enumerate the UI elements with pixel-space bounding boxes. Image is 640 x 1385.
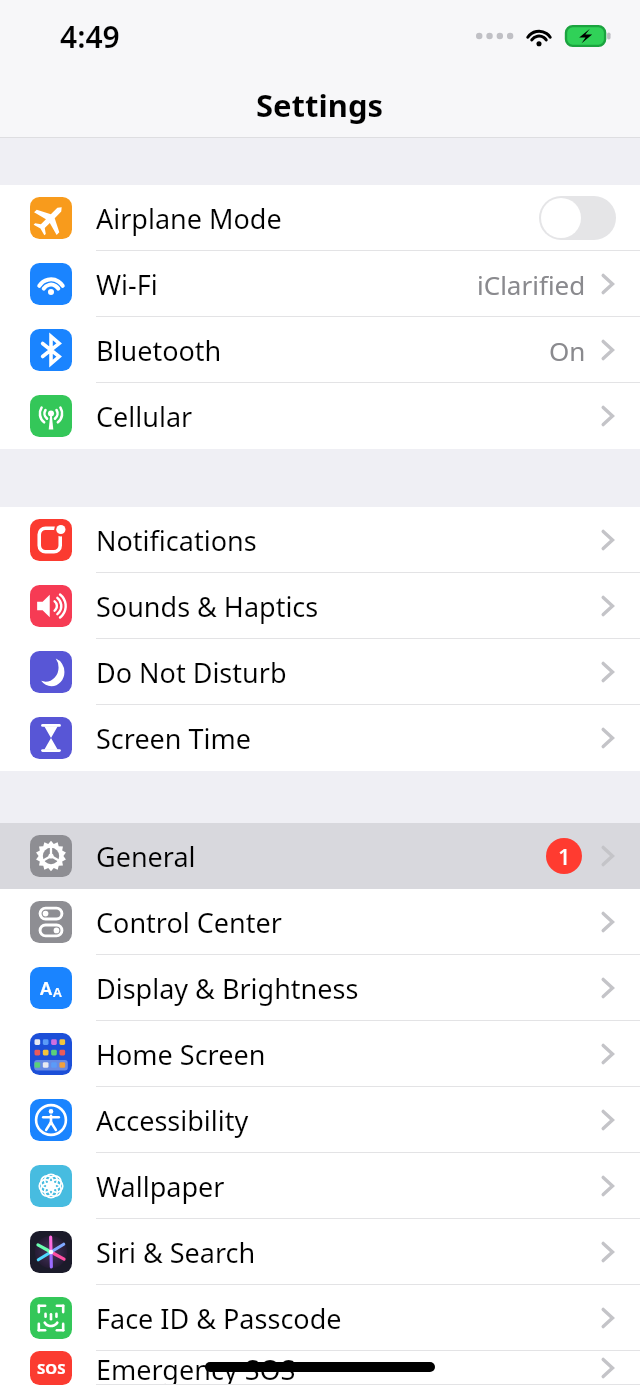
button[interactable]: A <box>0 955 640 1021</box>
staticText: Screen Time <box>96 720 600 757</box>
button[interactable]: Airplane Mode toggle, off <box>539 196 616 240</box>
other: Open <box>600 337 616 363</box>
button[interactable]: Airplane Mode <box>0 185 640 251</box>
other: Open <box>600 909 616 935</box>
button[interactable]: Sounds & Haptics <box>0 573 640 639</box>
other: Open <box>600 1355 616 1381</box>
button[interactable]: Bluetooth <box>0 317 640 383</box>
button[interactable]: Home Screen <box>0 1021 640 1087</box>
other: Open <box>600 593 616 619</box>
staticText: Sounds & Haptics <box>96 588 600 625</box>
other: Open <box>600 403 616 429</box>
other: Open <box>600 1305 616 1331</box>
staticText: Notifications <box>96 522 600 559</box>
staticText: A <box>53 983 62 1001</box>
staticText: Wallpaper <box>96 1168 600 1205</box>
staticText: Siri & Search <box>96 1234 600 1271</box>
staticText: Bluetooth <box>96 332 549 369</box>
staticText: Emergency SOS <box>96 1351 600 1385</box>
other: Open <box>600 843 616 869</box>
staticText: Face ID & Passcode <box>96 1300 600 1337</box>
staticText: iClarified <box>477 267 586 302</box>
button[interactable]: Face ID & Passcode <box>0 1285 640 1351</box>
button[interactable]: SOS <box>0 1351 640 1385</box>
other: Open <box>600 659 616 685</box>
button[interactable]: Accessibility <box>0 1087 640 1153</box>
staticText: General <box>96 838 546 875</box>
staticText: 1 <box>558 841 571 871</box>
staticText: Home Screen <box>96 1036 600 1073</box>
button[interactable]: Notifications <box>0 507 640 573</box>
button[interactable]: Do Not Disturb <box>0 639 640 705</box>
other: Open <box>600 725 616 751</box>
button[interactable]: Control Center <box>0 889 640 955</box>
other: Open <box>600 1107 616 1133</box>
staticText: Accessibility <box>96 1102 600 1139</box>
staticText: Settings <box>256 84 384 126</box>
button[interactable]: General <box>0 823 640 889</box>
other: Open <box>600 975 616 1001</box>
staticText: Control Center <box>96 904 600 941</box>
other: Open <box>600 1173 616 1199</box>
staticText: SOS <box>37 1358 66 1378</box>
staticText: On <box>549 333 586 368</box>
button[interactable]: Wi-Fi <box>0 251 640 317</box>
staticText: 4:49 <box>60 16 120 57</box>
staticText: Display & Brightness <box>96 970 600 1007</box>
button[interactable]: Screen Time <box>0 705 640 771</box>
staticText: Do Not Disturb <box>96 654 600 691</box>
other: Open <box>600 527 616 553</box>
button[interactable]: Wallpaper <box>0 1153 640 1219</box>
other: Open <box>600 1041 616 1067</box>
other: Open <box>600 271 616 297</box>
button[interactable]: Siri & Search <box>0 1219 640 1285</box>
button[interactable]: Cellular <box>0 383 640 449</box>
other: Open <box>600 1239 616 1265</box>
staticText: A <box>40 976 53 1001</box>
staticText: Wi-Fi <box>96 266 477 303</box>
staticText: Cellular <box>96 398 600 435</box>
staticText: Airplane Mode <box>96 200 539 237</box>
